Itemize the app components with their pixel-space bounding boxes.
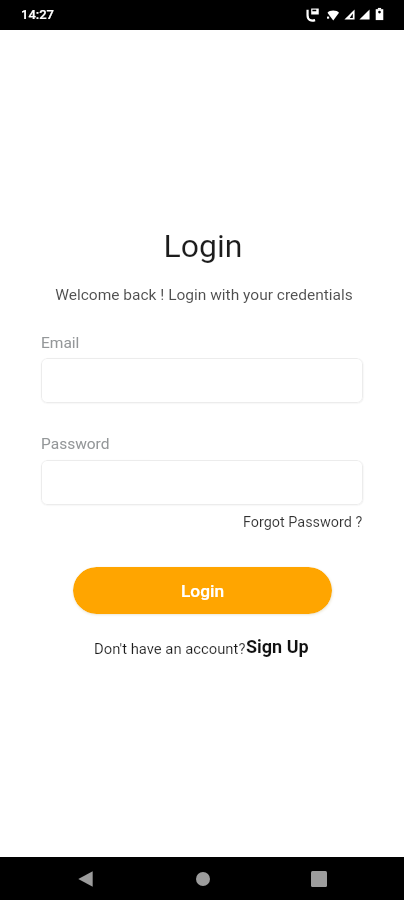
- button[interactable]: Recent apps: [299, 859, 339, 899]
- staticText: Sign Up: [246, 636, 309, 657]
- staticText: Password: [41, 435, 110, 453]
- staticText: Don't have an account?: [94, 640, 246, 657]
- staticText: Login: [1, 227, 404, 265]
- staticText: Login: [181, 581, 225, 601]
- button[interactable]: Back: [65, 859, 105, 899]
- button[interactable]: Home: [183, 859, 223, 899]
- button[interactable]: Login: [73, 567, 332, 614]
- button[interactable]: Forgot Password ?: [237, 509, 369, 536]
- staticText: Forgot Password ?: [243, 514, 363, 531]
- button[interactable]: Sign Up: [246, 636, 309, 657]
- staticText: Email: [41, 334, 80, 352]
- staticText: Welcome back ! Login with your credentia…: [2, 286, 404, 304]
- button[interactable]: [41, 460, 363, 505]
- button[interactable]: [41, 358, 363, 403]
- staticText: 14:27: [21, 7, 55, 22]
